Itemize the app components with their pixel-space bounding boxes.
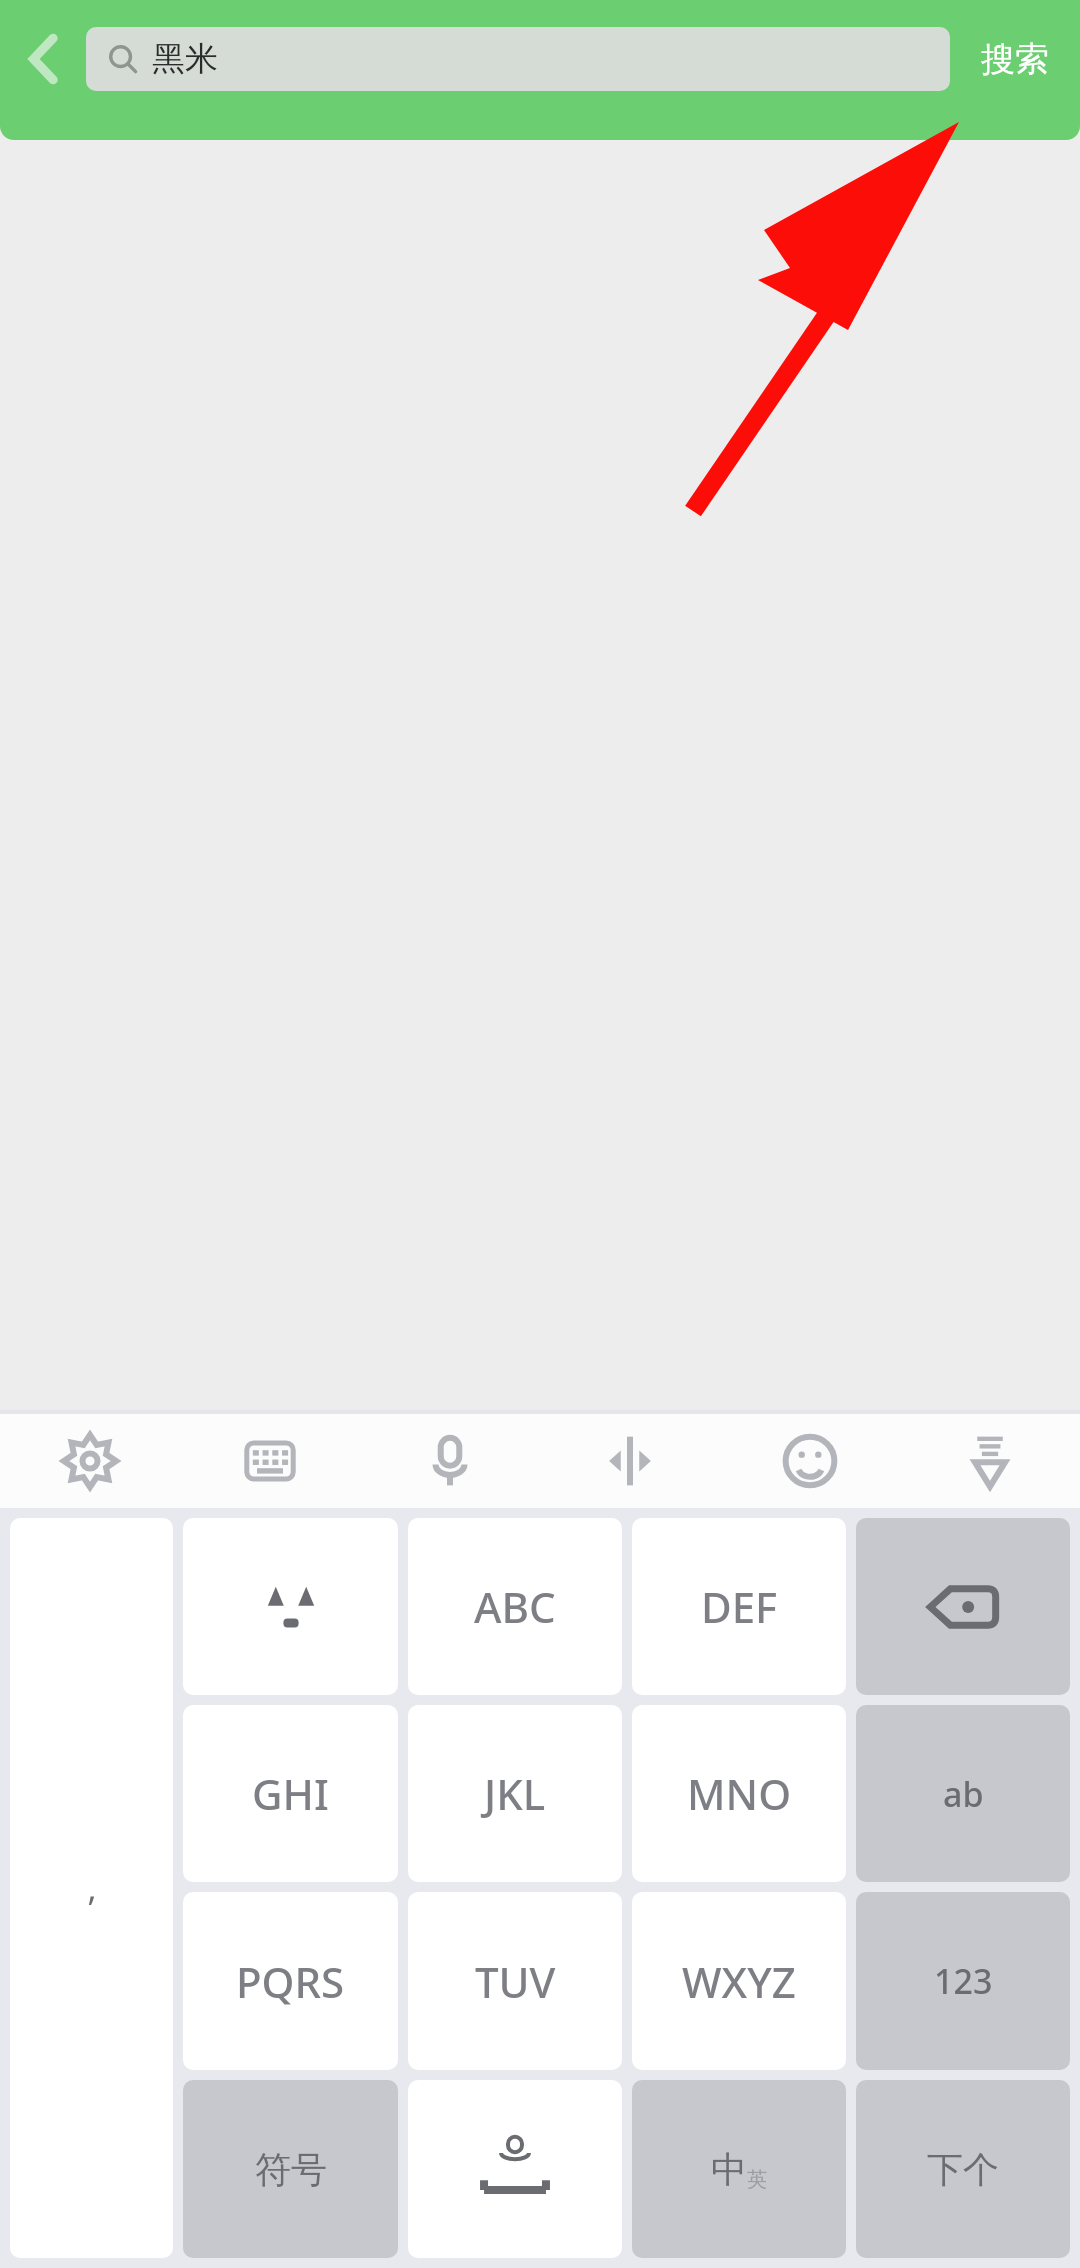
staticText: ABC: [474, 1578, 556, 1635]
button[interactable]: Keyboard layout: [180, 1414, 360, 1508]
staticText: 黑米: [152, 38, 218, 80]
button[interactable]: Back: [0, 18, 86, 100]
button[interactable]: Emoji: [720, 1414, 900, 1508]
button[interactable]: TUV: [408, 1892, 622, 2070]
button[interactable]: Space: [408, 2080, 622, 2258]
button[interactable]: 下个: [856, 2080, 1070, 2258]
button[interactable]: Backspace: [856, 1518, 1070, 1695]
button[interactable]: Settings: [0, 1414, 180, 1508]
button[interactable]: GHI: [183, 1705, 398, 1882]
button[interactable]: Move cursor: [540, 1414, 720, 1508]
staticText: PQRS: [236, 1953, 345, 2010]
staticText: ab: [943, 1771, 984, 1817]
staticText: WXYZ: [682, 1953, 796, 2010]
button[interactable]: JKL: [408, 1705, 622, 1882]
staticText: 英: [747, 2167, 767, 2192]
button[interactable]: 123: [856, 1892, 1070, 2070]
staticText: ,: [87, 1865, 97, 1911]
staticText: 搜索: [981, 38, 1049, 81]
button[interactable]: WXYZ: [632, 1892, 846, 2070]
staticText: TUV: [475, 1953, 556, 2010]
staticText: 中: [711, 2147, 747, 2192]
button[interactable]: MNO: [632, 1705, 846, 1882]
button[interactable]: PQRS: [183, 1892, 398, 2070]
staticText: DEF: [701, 1578, 778, 1635]
button[interactable]: 黑米: [86, 27, 950, 91]
button[interactable]: Voice input: [360, 1414, 540, 1508]
button[interactable]: ABC: [408, 1518, 622, 1695]
button[interactable]: Emoticon: [183, 1518, 398, 1695]
button[interactable]: Hide keyboard: [900, 1414, 1080, 1508]
button[interactable]: ab: [856, 1705, 1070, 1882]
staticText: MNO: [687, 1765, 792, 1822]
button[interactable]: 中: [632, 2080, 846, 2258]
staticText: JKL: [484, 1765, 546, 1822]
staticText: 下个: [927, 2147, 999, 2192]
staticText: 符号: [255, 2147, 327, 2192]
staticText: GHI: [252, 1765, 329, 1822]
button[interactable]: 搜索: [950, 18, 1080, 100]
staticText: 123: [934, 1958, 993, 2004]
button[interactable]: 符号: [183, 2080, 398, 2258]
button[interactable]: DEF: [632, 1518, 846, 1695]
